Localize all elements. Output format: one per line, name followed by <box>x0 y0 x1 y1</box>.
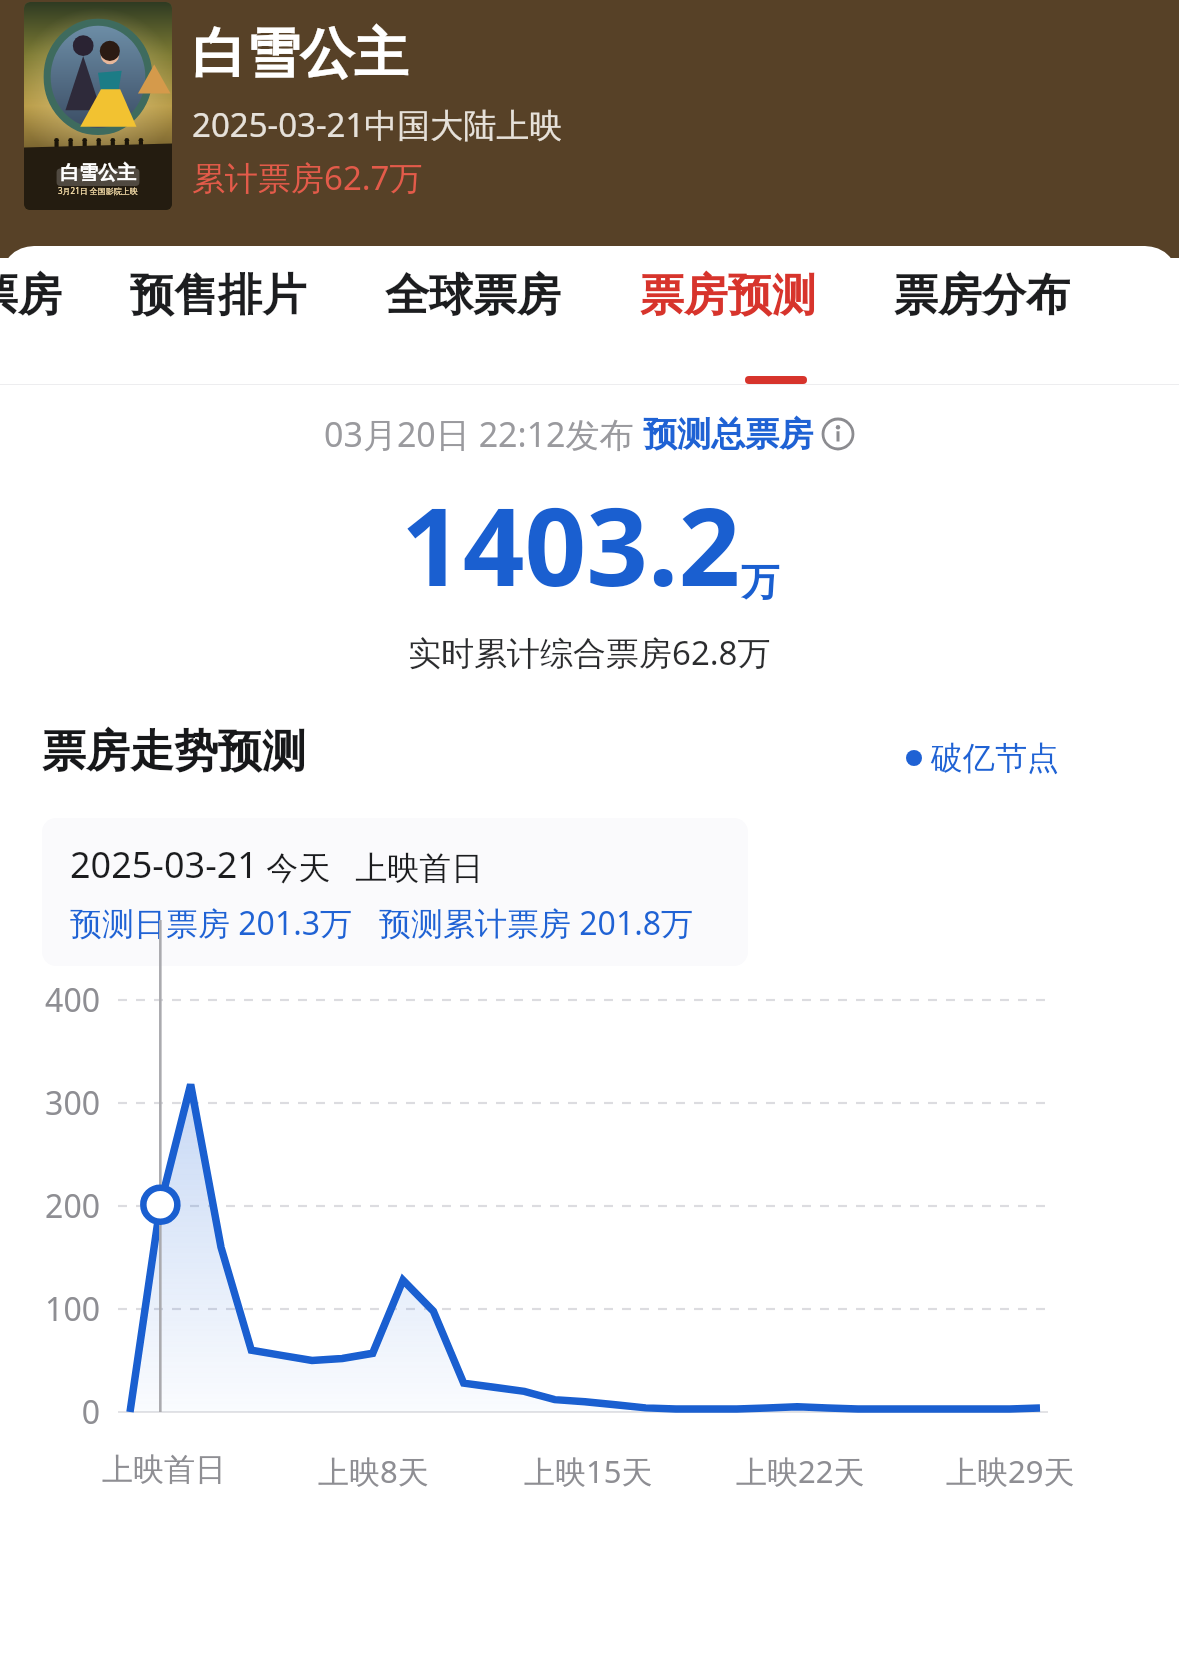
staticText: 上映8天 <box>318 1450 429 1492</box>
staticText: 今天 上映首日 <box>258 845 484 889</box>
staticText: 400 <box>45 978 100 1022</box>
staticText: 预测总票房 <box>643 413 813 456</box>
staticText: 实时累计综合票房62.8万 <box>408 630 771 675</box>
staticText: 2025-03-21中国大陆上映 <box>192 102 563 147</box>
staticText: 万 <box>741 558 779 606</box>
staticText: 预测累计票房 201.8万 <box>379 901 694 945</box>
staticText: 破亿节点 <box>931 738 1059 778</box>
button[interactable]: 说明 <box>821 417 855 451</box>
staticText: 300 <box>45 1081 100 1125</box>
staticText: 票房预测 <box>640 268 816 323</box>
staticText: 0 <box>81 1390 100 1434</box>
staticText: 全球票房 <box>385 268 561 323</box>
staticText: 预测日票房 201.3万 <box>70 901 353 945</box>
staticText: 预售排片 <box>130 268 306 323</box>
staticText: 上映15天 <box>524 1450 653 1492</box>
staticText: 上映首日 <box>102 1450 226 1489</box>
staticText: 上映22天 <box>736 1450 865 1492</box>
button[interactable]: 电影海报 <box>24 2 172 210</box>
staticText: 100 <box>45 1287 100 1331</box>
staticText: 白雪公主 <box>192 20 408 88</box>
staticText: 票房分布 <box>894 268 1070 323</box>
button[interactable]: 预售排片 <box>116 268 320 364</box>
button[interactable]: 2025-03-21 <box>42 818 748 966</box>
staticText: 1403.2 <box>401 471 741 618</box>
staticText: 票房 <box>0 268 62 323</box>
button[interactable]: 票房分布 <box>880 268 1084 364</box>
staticText: 200 <box>45 1184 100 1228</box>
staticText: 票房走势预测 <box>42 724 306 779</box>
staticText: 累计票房62.7万 <box>192 155 423 200</box>
staticText: 3月21日 全国影院上映 <box>58 185 138 196</box>
staticText: 03月20日 22:12发布 <box>324 411 643 457</box>
staticText: 白雪公主 <box>60 161 136 185</box>
button[interactable]: 全球票房 <box>371 268 575 364</box>
staticText: 上映29天 <box>946 1450 1075 1492</box>
staticText: 2025-03-21 <box>70 840 258 889</box>
button[interactable]: 票房预测 <box>626 268 830 364</box>
button[interactable]: 票房 <box>0 268 70 364</box>
button[interactable]: 破亿节点 <box>906 738 1059 778</box>
